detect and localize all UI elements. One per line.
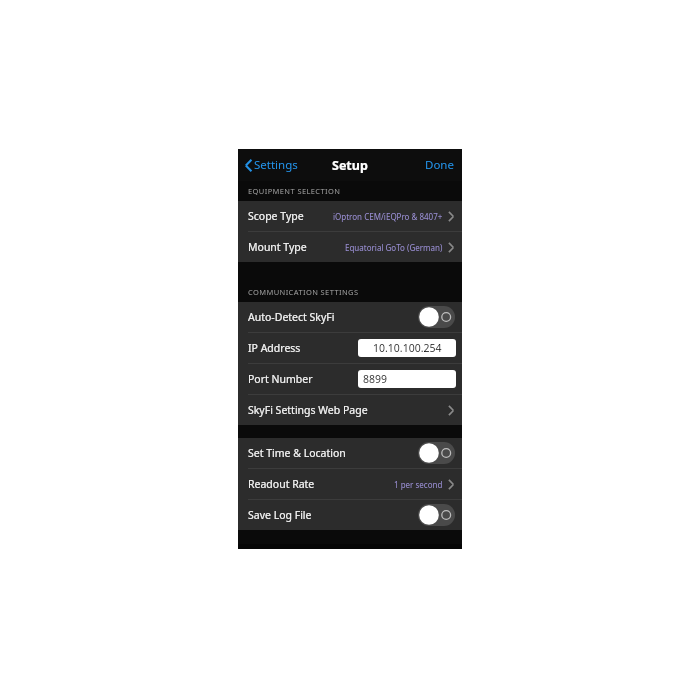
button[interactable]: SkyFi Settings Web Page [238,395,462,425]
staticText: Setup [332,157,368,174]
staticText: Scope Type [248,209,304,223]
staticText: COMMUNICATION SETTINGS [248,287,359,297]
staticText: Readout Rate [248,477,315,491]
staticText: SkyFi Settings Web Page [248,403,368,417]
staticText: Set Time & Location [248,446,346,460]
staticText: EQUIPMENT SELECTION [248,186,341,196]
button[interactable]: Toggle [418,504,455,526]
staticText: Done [425,157,454,173]
staticText: IP Address [248,341,301,355]
staticText: 8899 [363,372,388,386]
button[interactable]: Settings [238,153,304,177]
staticText: Equatorial GoTo (German) [345,242,443,253]
button[interactable]: Toggle [418,442,455,464]
staticText: Auto-Detect SkyFi [248,310,335,324]
staticText: Save Log File [248,508,312,522]
button[interactable]: Port Number [238,364,462,394]
staticText: Settings [254,157,298,173]
button[interactable]: IP Address [238,333,462,363]
button[interactable]: Toggle [418,306,455,328]
button[interactable]: Set Time & Location [238,438,462,468]
staticText: 10.10.100.254 [373,341,442,355]
button[interactable]: Readout Rate [238,469,462,499]
button[interactable]: Done [417,152,462,178]
staticText: 1 per second [394,479,443,490]
button[interactable]: Mount Type [238,232,462,262]
button[interactable]: Auto-Detect SkyFi [238,302,462,332]
staticText: Port Number [248,372,313,386]
staticText: Mount Type [248,240,307,254]
button[interactable]: Scope Type [238,201,462,231]
staticText: iOptron CEM/iEQPro & 8407+ [333,211,443,222]
button[interactable]: Save Log File [238,500,462,530]
